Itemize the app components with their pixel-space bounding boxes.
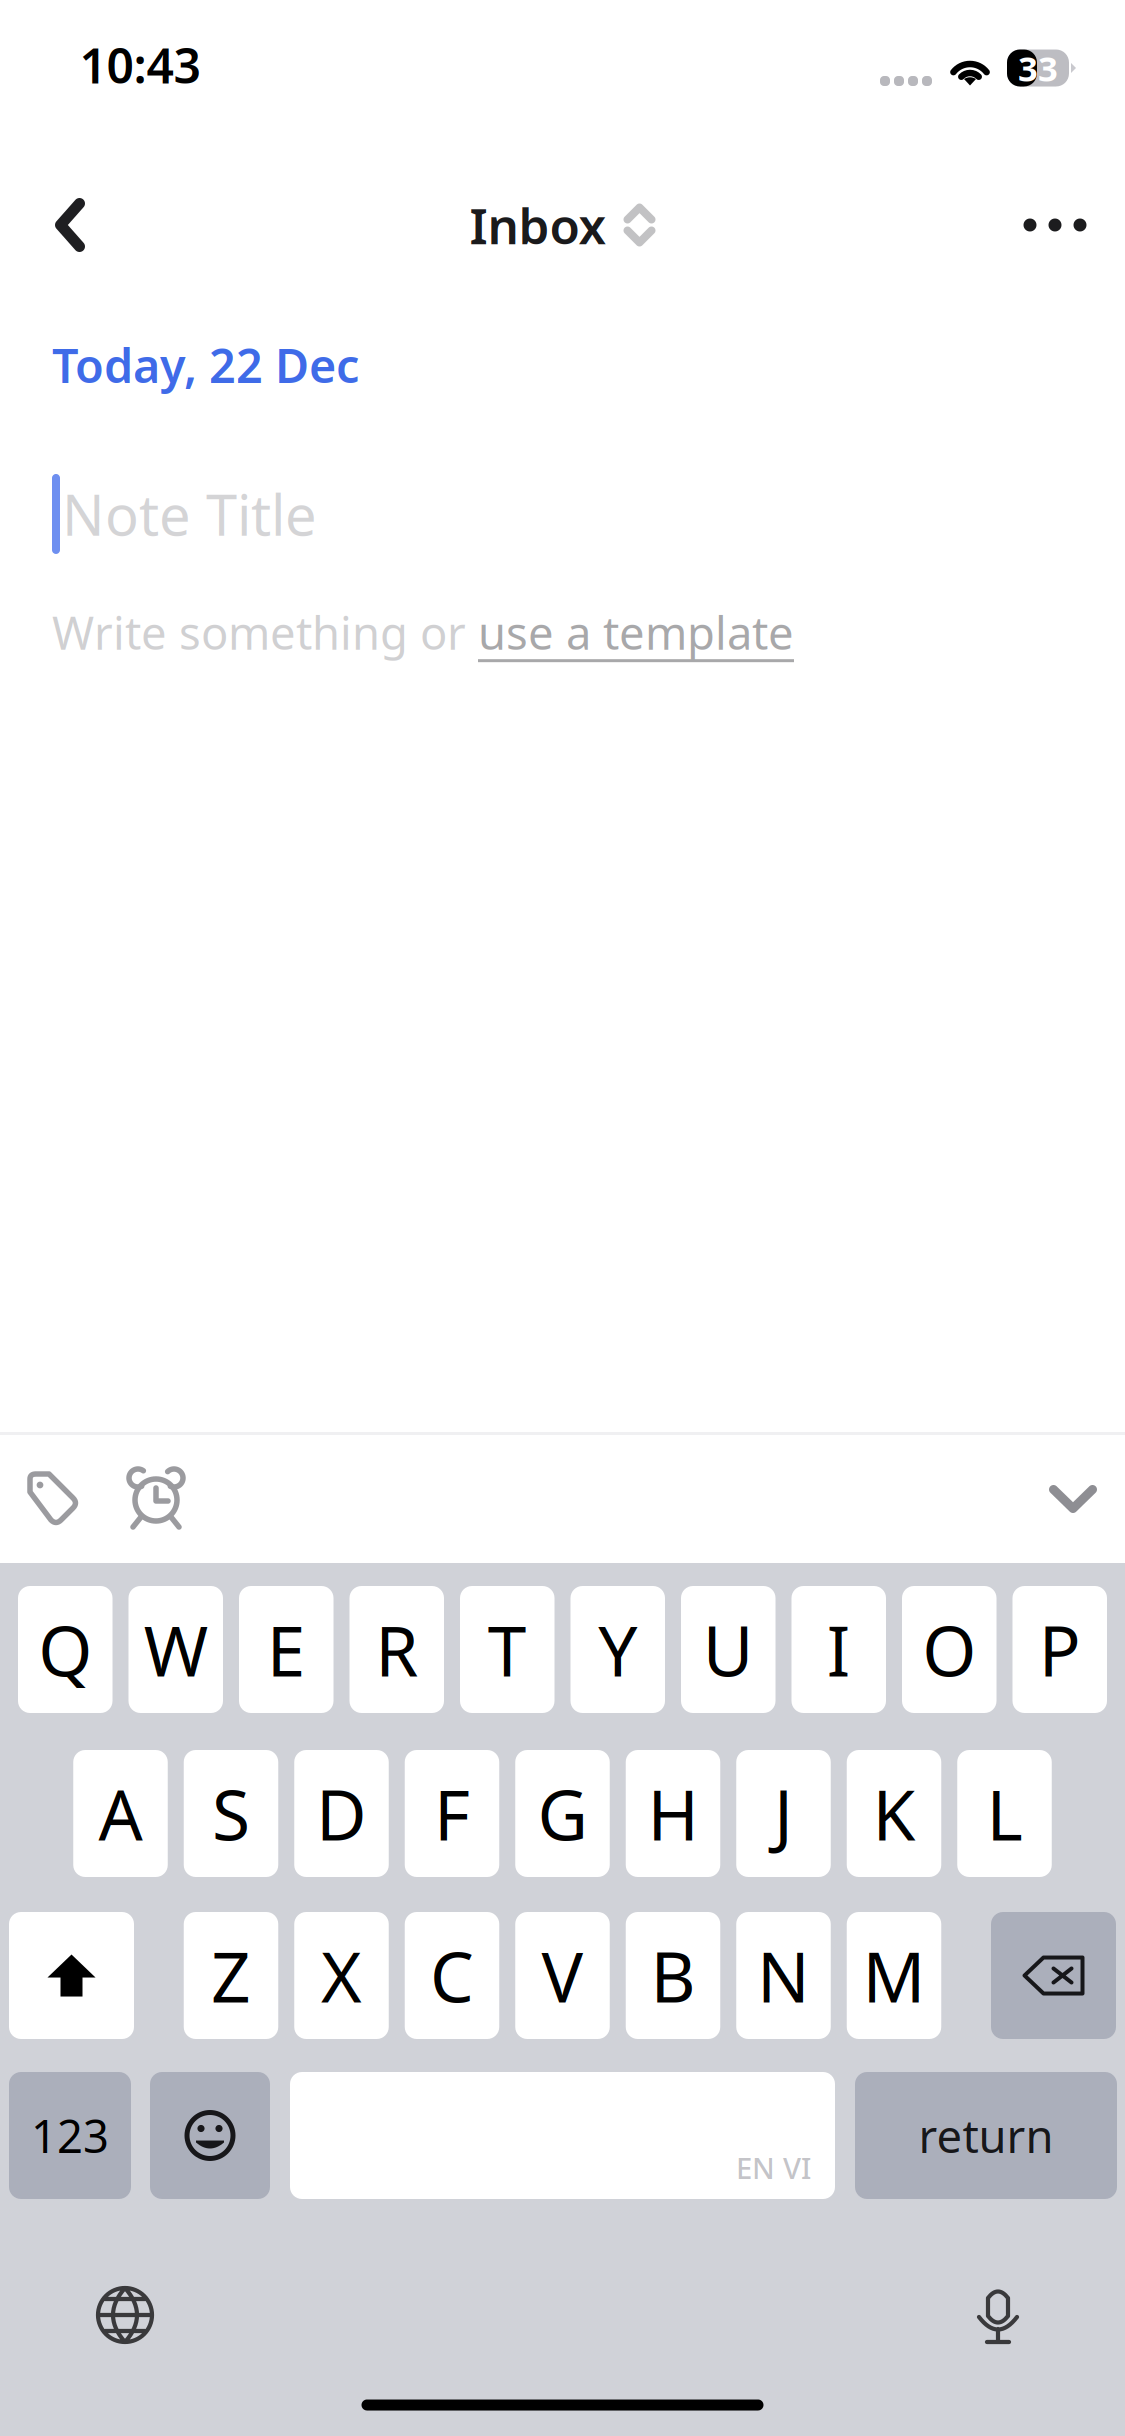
button[interactable]: J (736, 1750, 831, 1877)
staticText: L (986, 1767, 1022, 1860)
button[interactable]: U (681, 1586, 775, 1713)
button[interactable]: Space (290, 2072, 835, 2199)
staticText: 123 (31, 2105, 109, 2166)
button[interactable]: Dictate (976, 2284, 1020, 2346)
staticText: Z (211, 1929, 251, 2022)
staticText: R (375, 1603, 418, 1696)
button[interactable]: T (460, 1586, 554, 1713)
button[interactable]: Y (570, 1586, 665, 1713)
button[interactable]: Back (22, 177, 118, 273)
button[interactable]: P (1012, 1586, 1107, 1713)
button[interactable]: Switch keyboard (95, 2285, 155, 2345)
button[interactable]: D (294, 1750, 389, 1877)
staticText: Q (38, 1603, 92, 1696)
button[interactable]: G (515, 1750, 610, 1877)
button[interactable]: R (349, 1586, 444, 1713)
staticText: S (212, 1767, 250, 1860)
button[interactable]: Inbox (459, 177, 665, 273)
staticText: T (488, 1603, 527, 1696)
staticText: P (1039, 1603, 1081, 1696)
staticText: J (774, 1767, 793, 1860)
button[interactable]: M (847, 1912, 941, 2039)
staticText: E (267, 1603, 306, 1696)
button[interactable]: return (855, 2072, 1117, 2199)
staticText: K (872, 1767, 915, 1860)
staticText: O (922, 1603, 976, 1696)
staticText: EN VI (736, 2148, 811, 2187)
button[interactable]: Z (184, 1912, 278, 2039)
button[interactable]: S (184, 1750, 278, 1877)
staticText: N (757, 1929, 810, 2022)
staticText: D (316, 1767, 367, 1860)
staticText: Note Title (62, 477, 317, 551)
staticText: I (827, 1603, 851, 1696)
button[interactable]: 123 (9, 2072, 131, 2199)
staticText: Y (598, 1603, 637, 1696)
button[interactable]: O (902, 1586, 996, 1713)
button[interactable]: I (791, 1586, 886, 1713)
button[interactable]: X (294, 1912, 389, 2039)
staticText: A (98, 1767, 142, 1860)
button[interactable]: K (847, 1750, 941, 1877)
button[interactable]: Delete (991, 1912, 1116, 2039)
button[interactable]: V (515, 1912, 610, 2039)
button[interactable]: Set reminder (109, 1451, 205, 1547)
staticText: C (430, 1929, 474, 2022)
button[interactable]: Emoji (150, 2072, 270, 2199)
button[interactable]: A (73, 1750, 168, 1877)
button[interactable]: Hide keyboard (1025, 1451, 1121, 1547)
button[interactable]: C (405, 1912, 499, 2039)
staticText: W (144, 1603, 208, 1696)
button[interactable]: Q (18, 1586, 112, 1713)
staticText: Today, 22 Dec (52, 334, 359, 396)
staticText: M (862, 1929, 925, 2022)
staticText: Inbox (469, 192, 606, 258)
staticText: F (434, 1767, 470, 1860)
button[interactable]: F (405, 1750, 499, 1877)
staticText: V (541, 1929, 583, 2022)
staticText: 33 (1018, 45, 1058, 91)
staticText: H (647, 1767, 698, 1860)
staticText: Write something or (52, 602, 478, 662)
staticText: 10:43 (79, 33, 200, 97)
staticText: G (537, 1767, 587, 1860)
staticText: B (650, 1929, 695, 2022)
staticText: use a template (478, 602, 794, 662)
staticText: U (703, 1603, 754, 1696)
button[interactable]: E (239, 1586, 333, 1713)
button[interactable]: More options (1007, 177, 1103, 273)
button[interactable]: N (736, 1912, 831, 2039)
button[interactable]: B (626, 1912, 720, 2039)
staticText: X (321, 1929, 362, 2022)
button[interactable]: L (957, 1750, 1052, 1877)
button[interactable]: H (626, 1750, 720, 1877)
button[interactable]: W (128, 1586, 223, 1713)
staticText: return (918, 2105, 1053, 2166)
button[interactable]: Shift (9, 1912, 134, 2039)
button[interactable]: Add tag (5, 1451, 101, 1547)
